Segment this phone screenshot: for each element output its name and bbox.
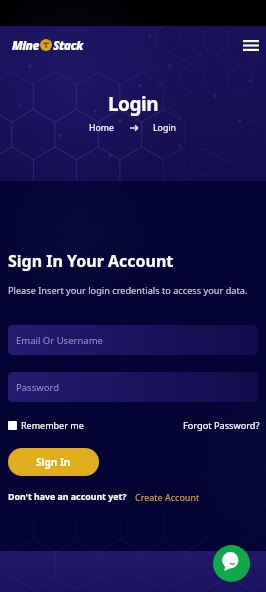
button[interactable]: Forgot Password? — [183, 419, 260, 432]
button[interactable]: Create Account — [135, 491, 200, 503]
staticText: Don't have an account yet? — [8, 491, 127, 503]
staticText: Please Insert your login credentials to … — [8, 284, 248, 297]
staticText: Login — [108, 91, 159, 117]
button[interactable]: Remember me — [8, 419, 84, 431]
button[interactable]: Password — [8, 372, 258, 402]
button[interactable]: Sign In — [8, 448, 99, 476]
staticText: Remember me — [21, 419, 84, 431]
staticText: Sign In — [36, 455, 71, 469]
staticText: Stack — [53, 37, 83, 53]
button[interactable]: Home — [89, 122, 115, 134]
button[interactable]: Email Or Username — [8, 325, 258, 355]
button[interactable]: Login — [153, 122, 177, 134]
staticText: Mine — [12, 37, 39, 53]
button[interactable]: Chat — [213, 545, 250, 582]
staticText: Sign In Your Account — [8, 250, 174, 272]
staticText: Password — [16, 381, 59, 394]
staticText: Email Or Username — [16, 334, 103, 347]
button[interactable]: Menu — [241, 35, 261, 55]
